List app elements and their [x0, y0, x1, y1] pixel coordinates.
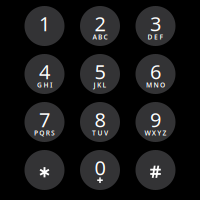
button[interactable]: 3 [135, 6, 175, 46]
button[interactable]: 1 [24, 6, 64, 46]
staticText: U [97, 129, 102, 137]
button[interactable]: 5 [80, 54, 120, 94]
staticText: Q [39, 129, 44, 137]
staticText: T [92, 129, 96, 137]
button[interactable]: 6 [135, 54, 175, 94]
staticText: 3 [150, 10, 161, 37]
staticText: J [94, 81, 96, 89]
staticText: 4 [39, 58, 50, 85]
staticText: M [146, 81, 152, 89]
staticText: Z [163, 129, 167, 137]
staticText: A [93, 33, 97, 41]
staticText: 2 [94, 10, 105, 37]
button[interactable]: Star [24, 150, 64, 190]
staticText: I [50, 81, 52, 89]
staticText: G [37, 81, 42, 89]
staticText: E [154, 33, 158, 41]
staticText: L [102, 81, 106, 89]
staticText: 7 [39, 106, 50, 133]
staticText: 8 [94, 106, 105, 133]
button[interactable]: 2 [80, 6, 120, 46]
button[interactable]: 0 [80, 150, 120, 190]
staticText: P [34, 129, 38, 137]
staticText: 6 [150, 58, 161, 85]
button[interactable]: 4 [24, 54, 64, 94]
staticText: X [152, 129, 156, 137]
staticText: Y [157, 129, 161, 137]
staticText: F [159, 33, 163, 41]
staticText: C [103, 33, 107, 41]
staticText: R [46, 129, 50, 137]
staticText: K [97, 81, 101, 89]
staticText: 9 [150, 106, 161, 133]
staticText: D [148, 33, 153, 41]
staticText: B [98, 33, 102, 41]
staticText: 1 [39, 10, 50, 37]
button[interactable]: 9 [135, 102, 175, 142]
staticText: O [160, 81, 165, 89]
staticText: 5 [94, 58, 105, 85]
button[interactable]: Pound [135, 150, 175, 190]
staticText: W [144, 129, 150, 137]
staticText: 0 [94, 154, 105, 181]
staticText: V [104, 129, 108, 137]
button[interactable]: 7 [24, 102, 64, 142]
staticText: N [153, 81, 158, 89]
staticText: H [43, 81, 48, 89]
staticText: S [51, 129, 55, 137]
button[interactable]: 8 [80, 102, 120, 142]
